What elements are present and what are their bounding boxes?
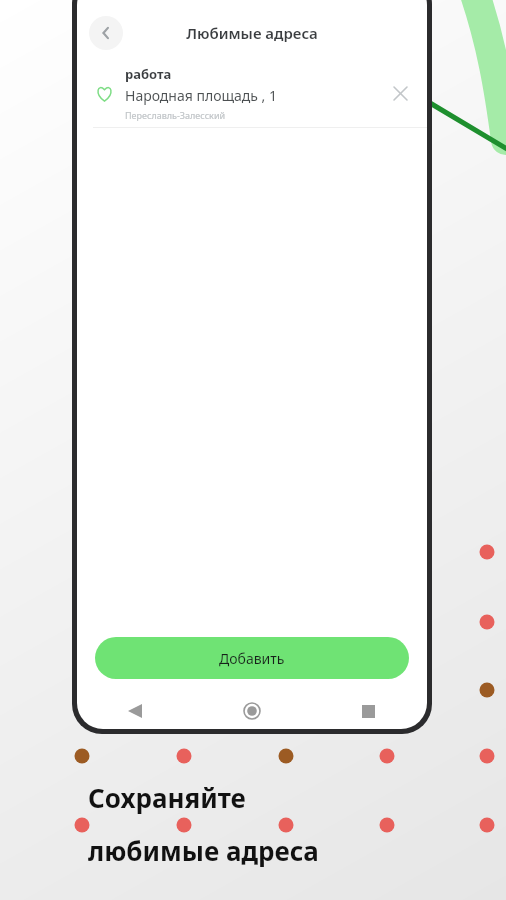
button[interactable]: Добавить — [95, 637, 409, 679]
staticText: Любимые адреса — [186, 23, 318, 43]
staticText: Народная площадь , 1 — [125, 86, 277, 105]
button[interactable]: Назад — [89, 16, 123, 50]
staticText: Сохраняйте — [88, 780, 246, 815]
staticText: любимые адреса — [88, 833, 319, 868]
button[interactable]: Recents — [310, 693, 427, 729]
staticText: работа — [125, 65, 172, 83]
button[interactable]: Home — [193, 693, 310, 729]
button[interactable]: работа — [77, 61, 427, 127]
button[interactable]: Back — [77, 693, 193, 729]
staticText: Переславль-Залесский — [125, 109, 226, 121]
staticText: Добавить — [219, 649, 285, 668]
button[interactable]: Удалить — [387, 80, 413, 106]
